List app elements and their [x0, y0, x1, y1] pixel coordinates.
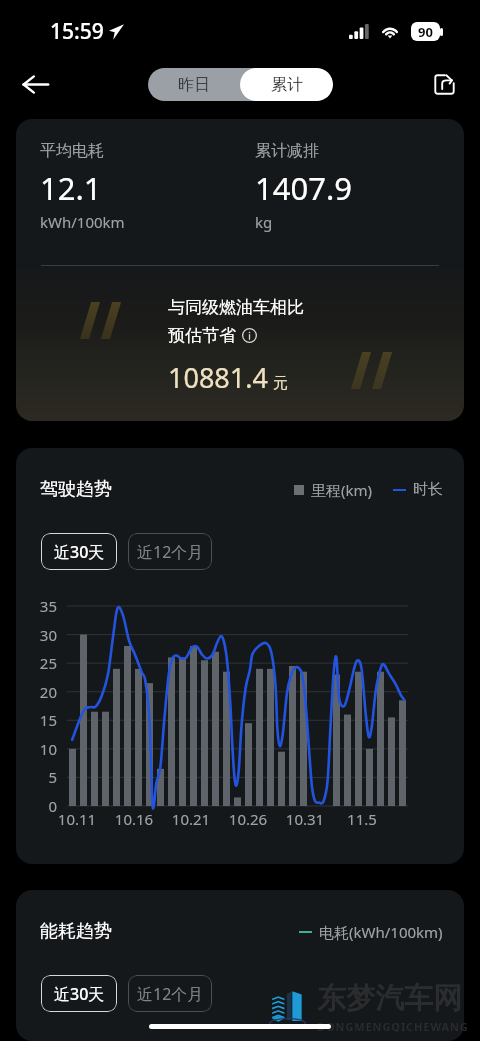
button[interactable]: 昨日: [148, 68, 240, 101]
staticText: 电耗(kWh/100km): [319, 922, 443, 942]
staticText: 5: [25, 767, 57, 787]
staticText: 10: [25, 739, 57, 759]
staticText: 10.26: [223, 809, 273, 829]
staticText: 12.1: [40, 167, 102, 209]
staticText: kg: [255, 212, 273, 232]
staticText: 90: [418, 23, 433, 41]
staticText: 累计: [271, 75, 303, 95]
staticText: 预估节省: [168, 325, 236, 346]
button[interactable]: 累计: [240, 68, 333, 101]
staticText: 平均电耗: [40, 141, 104, 161]
button[interactable]: 近30天: [41, 975, 117, 1012]
staticText: 0: [25, 796, 57, 816]
staticText: 11.5: [337, 809, 387, 829]
staticText: 驾驶趋势: [40, 478, 112, 501]
staticText: 10881.4: [168, 359, 268, 396]
staticText: 近30天: [54, 983, 105, 1005]
staticText: 1407.9: [255, 167, 352, 209]
staticText: 元: [273, 374, 288, 393]
staticText: 25: [25, 653, 57, 673]
staticText: 15: [25, 710, 57, 730]
staticText: 30: [25, 625, 57, 645]
staticText: 能耗趋势: [40, 920, 112, 943]
staticText: 昨日: [178, 75, 210, 95]
staticText: 15:59: [50, 17, 104, 46]
staticText: 20: [25, 682, 57, 702]
staticText: 累计减排: [255, 141, 319, 161]
staticText: 里程(km): [311, 480, 373, 500]
staticText: 10.31: [280, 809, 330, 829]
button[interactable]: Back: [14, 63, 56, 105]
staticText: 与同级燃油车相比: [168, 297, 304, 318]
button[interactable]: Share: [424, 64, 464, 104]
staticText: 10.11: [52, 809, 102, 829]
staticText: kWh/100km: [40, 212, 125, 232]
staticText: 35: [25, 596, 57, 616]
staticText: DONGMENGQICHEWANG: [317, 1019, 469, 1034]
staticText: 东梦汽车网: [317, 980, 462, 1017]
staticText: 10.21: [166, 809, 216, 829]
staticText: 近30天: [54, 541, 105, 563]
button[interactable]: 近30天: [41, 533, 117, 570]
staticText: 10.16: [109, 809, 159, 829]
staticText: 近12个月: [137, 983, 204, 1005]
staticText: 时长: [413, 480, 443, 499]
button[interactable]: 近12个月: [128, 975, 212, 1012]
button[interactable]: 近12个月: [128, 533, 212, 570]
staticText: 近12个月: [137, 541, 204, 563]
